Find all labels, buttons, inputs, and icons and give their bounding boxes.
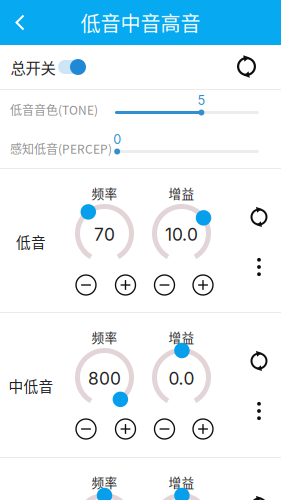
staticText: 低音中音高音 <box>80 8 200 37</box>
staticText: 低音 <box>16 231 46 252</box>
button[interactable]: Master switch <box>56 54 88 80</box>
button[interactable]: Decrease <box>71 415 101 442</box>
button[interactable]: More options <box>249 256 269 278</box>
staticText: 5 <box>197 93 205 108</box>
staticText: 增益 <box>168 328 194 346</box>
staticText: 低音音色(TONE) <box>10 101 98 118</box>
staticText: 感知低音(PERCEP) <box>10 140 112 157</box>
staticText: 10.0 <box>165 224 198 245</box>
button[interactable]: More options <box>249 400 269 422</box>
staticText: 800 <box>88 368 121 389</box>
button[interactable]: Reset band <box>249 207 268 226</box>
button[interactable]: Increase <box>188 415 218 442</box>
staticText: 频率 <box>91 184 117 202</box>
button[interactable]: Reset band <box>249 496 268 500</box>
button[interactable]: Increase <box>188 271 218 298</box>
button[interactable]: Increase <box>110 415 140 442</box>
staticText: 中低音 <box>8 375 53 396</box>
button[interactable]: Decrease <box>71 271 101 298</box>
button[interactable]: Back <box>0 0 40 45</box>
staticText: 增益 <box>168 473 194 491</box>
staticText: 70 <box>94 224 115 245</box>
staticText: 增益 <box>168 184 194 202</box>
staticText: 总开关 <box>10 56 55 78</box>
button[interactable]: Reset band <box>249 351 268 370</box>
staticText: 0.0 <box>168 368 194 389</box>
staticText: 频率 <box>91 473 117 491</box>
button[interactable]: Increase <box>110 271 140 298</box>
staticText: 频率 <box>91 328 117 346</box>
button[interactable]: Decrease <box>149 415 179 442</box>
staticText: 0 <box>113 132 121 147</box>
button[interactable]: Decrease <box>149 271 179 298</box>
button[interactable]: Reset all <box>236 56 257 77</box>
